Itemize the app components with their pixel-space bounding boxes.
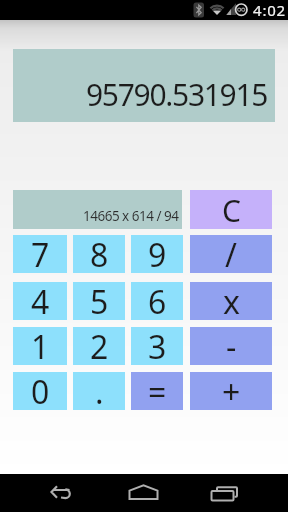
- staticText: 7: [31, 233, 50, 271]
- staticText: 9: [148, 233, 167, 271]
- staticText: 6: [148, 280, 167, 318]
- staticText: 4:02: [253, 0, 286, 20]
- staticText: 5: [90, 280, 109, 318]
- button[interactable]: /: [190, 235, 272, 273]
- staticText: 4: [31, 280, 50, 318]
- staticText: C: [222, 190, 241, 229]
- staticText: -: [226, 325, 237, 363]
- staticText: .: [95, 370, 104, 408]
- staticText: 0: [31, 370, 50, 408]
- staticText: 14665 x 614 / 94: [83, 207, 179, 225]
- button[interactable]: 3: [131, 327, 183, 365]
- button[interactable]: x: [190, 282, 272, 320]
- staticText: 1: [31, 325, 50, 363]
- button[interactable]: -: [190, 327, 272, 365]
- staticText: /: [225, 233, 237, 271]
- button[interactable]: C: [190, 190, 272, 229]
- button[interactable]: 7: [13, 235, 67, 273]
- button[interactable]: 6: [131, 282, 183, 320]
- staticText: 95790.531915: [86, 74, 268, 115]
- button[interactable]: [121, 474, 165, 512]
- button[interactable]: .: [73, 372, 125, 410]
- staticText: =: [148, 370, 167, 408]
- staticText: x: [223, 280, 240, 318]
- button[interactable]: +: [190, 372, 272, 410]
- button[interactable]: 8: [73, 235, 125, 273]
- staticText: 8: [90, 233, 109, 271]
- button[interactable]: =: [131, 372, 183, 410]
- button[interactable]: [200, 474, 244, 512]
- staticText: +: [222, 370, 241, 408]
- staticText: 3: [148, 325, 167, 363]
- button[interactable]: [38, 474, 82, 512]
- button[interactable]: 5: [73, 282, 125, 320]
- button[interactable]: 9: [131, 235, 183, 273]
- button[interactable]: 2: [73, 327, 125, 365]
- button[interactable]: 1: [13, 327, 67, 365]
- staticText: 2: [90, 325, 109, 363]
- button[interactable]: 4: [13, 282, 67, 320]
- button[interactable]: 0: [13, 372, 67, 410]
